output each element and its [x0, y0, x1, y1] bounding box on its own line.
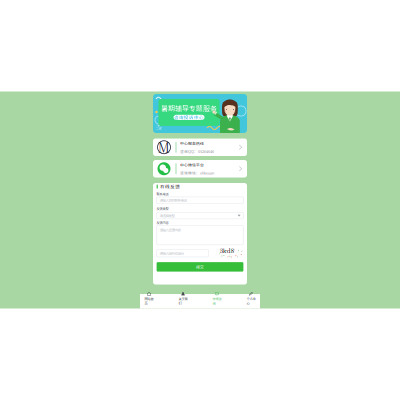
button[interactable]: 请输入您的联系电话: [157, 197, 243, 203]
staticText: 请选择类型: [159, 213, 174, 218]
staticText: 3kd8: [220, 246, 234, 255]
staticText: 网站首页: [145, 296, 154, 306]
staticText: 反馈类型: [157, 206, 169, 211]
button[interactable]: 请选择类型: [157, 212, 243, 219]
staticText: 中心服务热线: [180, 140, 204, 146]
button[interactable]: 提交: [157, 262, 243, 272]
staticText: 咨询微信：xhkxuan: [180, 170, 214, 175]
staticText: 在线咨询: [212, 296, 221, 306]
staticText: 关于我们: [178, 296, 187, 306]
staticText: 咨询QQ：05264646: [180, 148, 214, 154]
button[interactable]: 请输入反馈内容: [157, 226, 243, 245]
button[interactable]: M: [153, 138, 247, 156]
staticText: 个人中心: [246, 296, 255, 306]
staticText: 联系电话: [157, 192, 169, 196]
button[interactable]: 请输入图形验证码: [157, 250, 209, 257]
button[interactable]: 网站首页: [144, 294, 155, 308]
button[interactable]: 在线咨询: [211, 294, 222, 308]
staticText: M: [158, 139, 170, 156]
staticText: 请输入反馈内容: [159, 227, 180, 232]
staticText: 在线反馈: [160, 183, 180, 190]
staticText: 反馈内容: [157, 220, 169, 225]
button[interactable]: 中心微信平台: [153, 160, 247, 177]
staticText: 中心微信平台: [180, 162, 204, 168]
button[interactable]: 关于我们: [177, 294, 188, 308]
staticText: 咨询投诉中心: [174, 114, 204, 121]
staticText: 提交: [196, 264, 204, 270]
staticText: 请输入图形验证码: [159, 251, 183, 256]
button[interactable]: 个人中心: [245, 294, 256, 308]
staticText: 请输入您的联系电话: [159, 198, 186, 203]
staticText: 暑期辅导专题服务: [161, 103, 217, 113]
